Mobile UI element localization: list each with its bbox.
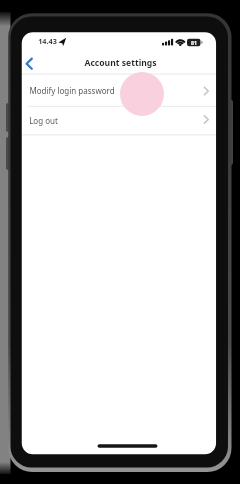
staticText: Log out	[29, 115, 58, 126]
staticText: Modify login password	[29, 85, 115, 96]
button[interactable]: Log out	[22, 106, 218, 134]
button[interactable]: Modify login password	[22, 75, 218, 106]
staticText: 81	[191, 39, 197, 46]
staticText: 14.43	[38, 36, 57, 46]
button[interactable]	[22, 52, 44, 74]
staticText: Account settings	[84, 57, 157, 69]
